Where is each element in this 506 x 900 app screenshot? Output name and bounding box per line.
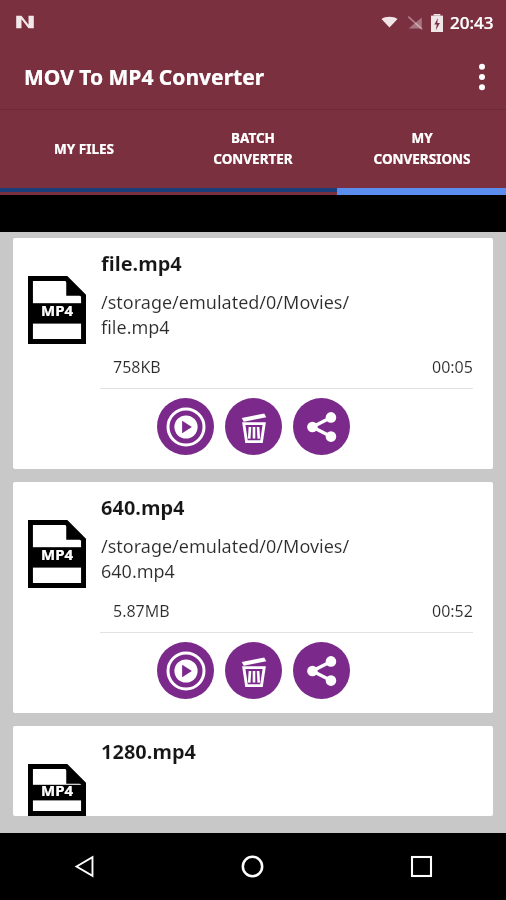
button[interactable]: Delete: [225, 398, 282, 455]
staticText: MY FILES: [54, 140, 114, 158]
button[interactable]: MY FILES: [0, 110, 168, 195]
staticText: 20:43: [450, 11, 494, 34]
staticText: MP4: [41, 544, 74, 564]
button[interactable]: Share: [293, 398, 350, 455]
staticText: CONVERTER: [213, 150, 293, 168]
staticText: BATCH: [231, 129, 275, 147]
button[interactable]: BATCH: [168, 110, 337, 195]
staticText: MOV To MP4 Converter: [24, 63, 265, 92]
staticText: 00:52: [432, 600, 473, 622]
staticText: /storage/emulated/0/Movies/: [101, 534, 350, 559]
button[interactable]: MP4: [13, 238, 493, 469]
staticText: CONVERSIONS: [373, 150, 471, 168]
staticText: /storage/emulated/0/Movies/: [101, 290, 350, 315]
staticText: MP4: [41, 780, 74, 800]
staticText: MP4: [41, 300, 74, 320]
button[interactable]: Share: [293, 642, 350, 699]
staticText: file.mp4: [101, 250, 182, 277]
staticText: file.mp4: [101, 315, 170, 340]
button[interactable]: Delete: [225, 642, 282, 699]
staticText: MY: [411, 129, 433, 147]
staticText: 758KB: [113, 356, 161, 378]
button[interactable]: Play: [157, 398, 214, 455]
staticText: 640.mp4: [101, 494, 185, 521]
staticText: 5.87MB: [113, 600, 170, 622]
button[interactable]: MP4: [13, 482, 493, 713]
button[interactable]: Home: [168, 833, 337, 900]
button[interactable]: MP4: [13, 726, 493, 816]
button[interactable]: More options: [458, 53, 506, 101]
button[interactable]: Recent apps: [337, 833, 506, 900]
staticText: 640.mp4: [101, 559, 175, 584]
button[interactable]: Back: [0, 833, 168, 900]
button[interactable]: Play: [157, 642, 214, 699]
staticText: 00:05: [432, 356, 473, 378]
staticText: 1280.mp4: [101, 738, 196, 765]
button[interactable]: MY: [337, 110, 506, 195]
